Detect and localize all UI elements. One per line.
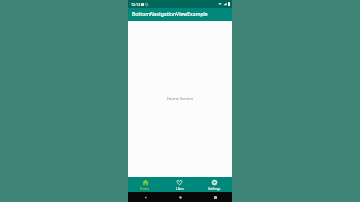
staticText: 12:13	[131, 2, 141, 7]
button[interactable]: Likes	[162, 177, 197, 192]
button[interactable]: Settings	[197, 177, 232, 192]
button[interactable]: Recents	[212, 194, 218, 200]
staticText: Settings	[208, 187, 221, 191]
button[interactable]: Home	[177, 194, 183, 200]
staticText: Home Screen	[167, 96, 194, 102]
button[interactable]: Back	[142, 194, 148, 200]
button[interactable]: Home	[128, 177, 162, 192]
staticText: Home	[140, 187, 150, 191]
staticText: BottomNavigationViewExample	[132, 11, 208, 18]
staticText: Likes	[176, 187, 184, 191]
